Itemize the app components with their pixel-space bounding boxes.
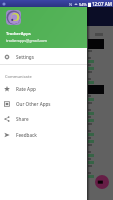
button[interactable]: Feedback <box>0 127 87 143</box>
button[interactable]: Add <box>95 175 109 189</box>
staticText: N <box>69 2 73 7</box>
staticText: Communicate <box>5 74 32 79</box>
staticText: Share <box>16 116 29 122</box>
button[interactable]: Our Other Apps <box>0 96 87 111</box>
button[interactable]: Rate App <box>0 81 87 96</box>
staticText: Settings <box>16 54 34 60</box>
button[interactable]: Share <box>0 111 87 127</box>
button[interactable]: Settings <box>0 49 87 64</box>
staticText: Our Other Apps <box>16 101 51 107</box>
staticText: Feedback <box>16 132 37 138</box>
staticText: trackerapps@gmail.com <box>6 38 47 43</box>
staticText: TrackerApps <box>6 31 31 37</box>
staticText: 12:07 AM <box>92 1 112 7</box>
staticText: 54% <box>79 2 87 7</box>
staticText: Rate App <box>16 86 36 92</box>
